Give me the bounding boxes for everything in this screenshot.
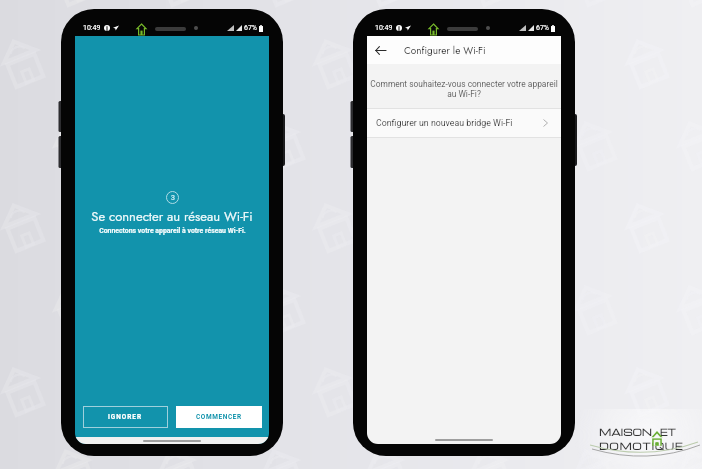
staticText: Configurer un nouveau bridge Wi-Fi: [376, 118, 513, 128]
staticText: 3: [171, 194, 175, 202]
staticText: Connectons votre appareil à votre réseau…: [99, 227, 246, 235]
staticText: 67%: [536, 24, 549, 32]
button[interactable]: Back: [367, 37, 393, 63]
staticText: COMMENCER: [196, 413, 242, 421]
staticText: MAISON ET: [599, 426, 676, 439]
button[interactable]: IGNORER: [83, 406, 168, 428]
button[interactable]: COMMENCER: [176, 406, 262, 428]
staticText: 67%: [244, 24, 257, 32]
staticText: Configurer le Wi-Fi: [404, 43, 486, 57]
staticText: 10:49: [83, 24, 101, 32]
staticText: Comment souhaitez-vous connecter votre a…: [367, 79, 561, 99]
staticText: IGNORER: [108, 413, 143, 421]
staticText: 10:49: [375, 24, 393, 32]
button[interactable]: Configurer un nouveau bridge Wi-Fi: [367, 109, 561, 137]
staticText: DOMOTIQUE: [599, 440, 684, 453]
staticText: Se connecter au réseau Wi-Fi: [91, 207, 253, 226]
